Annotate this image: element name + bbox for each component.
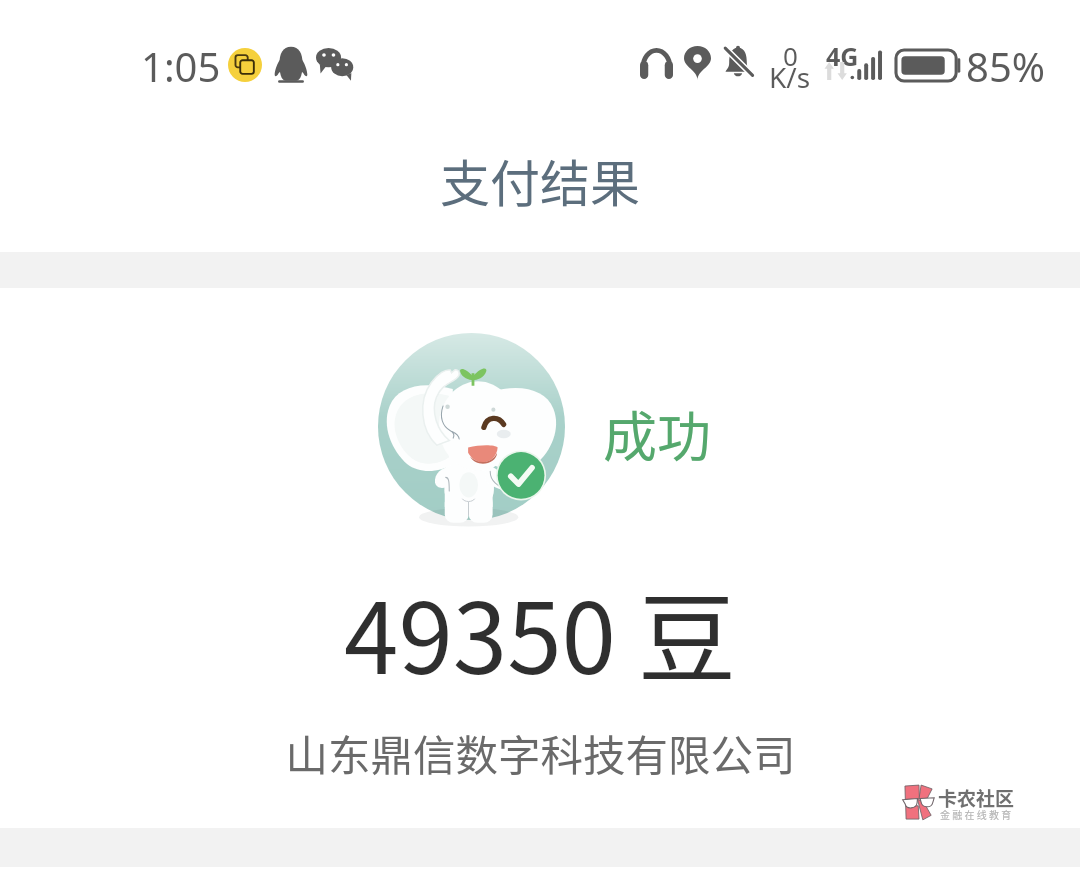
other: Battery 85 percent	[896, 50, 960, 81]
staticText: 0	[783, 38, 798, 73]
staticText: 山东鼎信数字科技有限公司	[285, 722, 796, 784]
other: Location on	[684, 46, 711, 80]
other: Silent mode	[720, 45, 756, 81]
other: 支付成功	[378, 333, 565, 520]
staticText: 49350 豆	[344, 560, 736, 702]
other: Mobile signal	[850, 48, 883, 80]
other: Headphones connected	[640, 48, 673, 79]
staticText: 1:05	[141, 39, 221, 93]
staticText: 成功	[603, 394, 711, 472]
staticText: 金 融 在 线 教 育	[940, 807, 1012, 821]
staticText: 85%	[966, 39, 1045, 93]
staticText: K/s	[769, 58, 811, 96]
staticText: 卡农社区	[938, 784, 1015, 812]
staticText: 4G	[826, 39, 859, 73]
staticText: 支付结果	[440, 144, 640, 216]
